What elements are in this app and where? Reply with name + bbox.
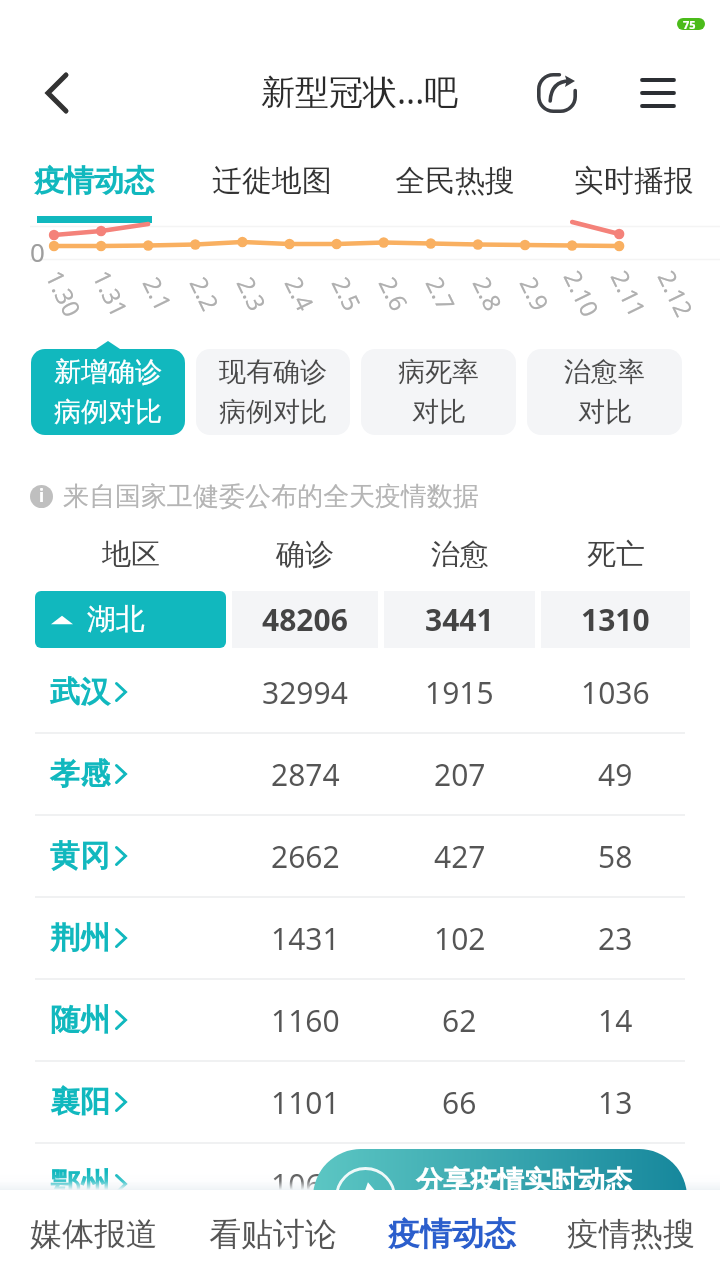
staticText: 来自国家卫健委公布的全天疫情数据: [63, 480, 479, 513]
button[interactable]: 分享疫情实时动态: [313, 1149, 687, 1245]
staticText: 2.2: [183, 271, 227, 316]
staticText: 1431: [271, 918, 340, 959]
staticText: 2.9: [513, 271, 557, 316]
button[interactable]: 黄冈: [0, 816, 720, 896]
staticText: 1.30: [39, 265, 89, 322]
button[interactable]: 看贴讨论: [183, 1190, 362, 1280]
button[interactable]: 现有确诊: [196, 349, 350, 435]
staticText: 孝感: [50, 755, 110, 793]
button[interactable]: Back: [0, 46, 114, 140]
button[interactable]: 全民热搜: [355, 140, 554, 226]
staticText: 治愈: [431, 536, 489, 573]
staticText: 实时播报: [574, 162, 694, 200]
staticText: 湖北: [87, 601, 145, 638]
staticText: 病死率: [398, 355, 479, 389]
button[interactable]: Menu: [613, 46, 703, 140]
staticText: 207: [434, 754, 486, 795]
button[interactable]: 武汉: [0, 652, 720, 732]
staticText: 3441: [425, 599, 494, 640]
staticText: 2.10: [557, 265, 607, 322]
staticText: 25: [598, 1164, 633, 1205]
staticText: 2662: [271, 836, 340, 877]
staticText: 死亡: [587, 536, 645, 573]
button[interactable]: 迁徙地图: [188, 140, 355, 226]
staticText: 58: [598, 836, 633, 877]
button[interactable]: 病死率: [361, 349, 516, 435]
button[interactable]: 随州: [0, 980, 720, 1060]
staticText: 2.8: [466, 271, 510, 316]
staticText: 襄阳: [50, 1083, 110, 1121]
staticText: 病例对比: [54, 395, 162, 429]
staticText: 地区: [102, 536, 160, 573]
staticText: 对比: [412, 395, 466, 429]
staticText: 66: [442, 1082, 477, 1123]
staticText: 武汉: [50, 673, 110, 711]
staticText: 病例对比: [219, 395, 327, 429]
button[interactable]: 孝感: [0, 734, 720, 814]
staticText: 分享疫情实时动态: [416, 1164, 632, 1198]
staticText: 黄冈: [50, 837, 110, 875]
staticText: 2.7: [419, 271, 463, 316]
staticText: 对比: [578, 395, 632, 429]
button[interactable]: 疫情动态: [0, 140, 188, 226]
staticText: 32994: [262, 672, 348, 713]
staticText: 102: [434, 918, 486, 959]
button[interactable]: 实时播报: [554, 140, 714, 226]
staticText: 疫情动态: [388, 1214, 516, 1254]
staticText: 14: [598, 1000, 633, 1041]
staticText: 1915: [425, 672, 494, 713]
staticText: 2.6: [372, 271, 416, 316]
staticText: 迁徙地图: [212, 162, 332, 200]
staticText: 49: [598, 754, 633, 795]
staticText: 随州: [50, 1001, 110, 1039]
staticText: 62: [442, 1000, 477, 1041]
staticText: 1065: [271, 1164, 340, 1205]
staticText: 1160: [271, 1000, 340, 1041]
staticText: 2.11: [604, 265, 654, 322]
staticText: 疫情热搜: [567, 1214, 695, 1254]
button[interactable]: 媒体报道: [4, 1190, 183, 1280]
button[interactable]: 鄂州: [0, 1144, 720, 1224]
staticText: 新增确诊: [54, 355, 162, 389]
button[interactable]: 湖北: [35, 591, 226, 648]
staticText: 全民热搜: [395, 162, 515, 200]
staticText: 确诊: [276, 536, 334, 573]
button[interactable]: 疫情动态: [362, 1190, 541, 1280]
staticText: 75: [683, 17, 696, 29]
staticText: 2874: [271, 754, 340, 795]
staticText: 看贴讨论: [209, 1214, 337, 1254]
staticText: 1310: [581, 599, 650, 640]
staticText: 2.5: [325, 271, 369, 316]
button[interactable]: 荆州: [0, 898, 720, 978]
staticText: 1101: [271, 1082, 340, 1123]
staticText: i: [39, 484, 45, 507]
button[interactable]: Share: [512, 46, 602, 140]
staticText: 97: [442, 1164, 477, 1205]
staticText: 治愈率: [564, 355, 645, 389]
staticText: 1036: [581, 672, 650, 713]
staticText: 2.1: [136, 271, 180, 316]
staticText: 新型冠状...吧: [261, 68, 459, 114]
staticText: 48206: [262, 599, 348, 640]
button[interactable]: 治愈率: [527, 349, 682, 435]
staticText: 0: [30, 234, 45, 269]
button[interactable]: 新增确诊: [31, 349, 185, 435]
staticText: 鄂州: [50, 1165, 110, 1203]
staticText: 2.3: [230, 271, 274, 316]
staticText: 23: [598, 918, 633, 959]
staticText: 荆州: [50, 919, 110, 957]
staticText: 媒体报道: [30, 1214, 158, 1254]
button[interactable]: 疫情热搜: [541, 1190, 720, 1280]
staticText: 疫情动态: [34, 162, 154, 200]
button[interactable]: 襄阳: [0, 1062, 720, 1142]
staticText: 2.4: [278, 271, 322, 316]
staticText: 现有确诊: [219, 355, 327, 389]
staticText: 13: [598, 1082, 633, 1123]
staticText: 427: [434, 836, 486, 877]
staticText: 2.12: [651, 265, 701, 322]
staticText: 1.31: [86, 265, 136, 322]
